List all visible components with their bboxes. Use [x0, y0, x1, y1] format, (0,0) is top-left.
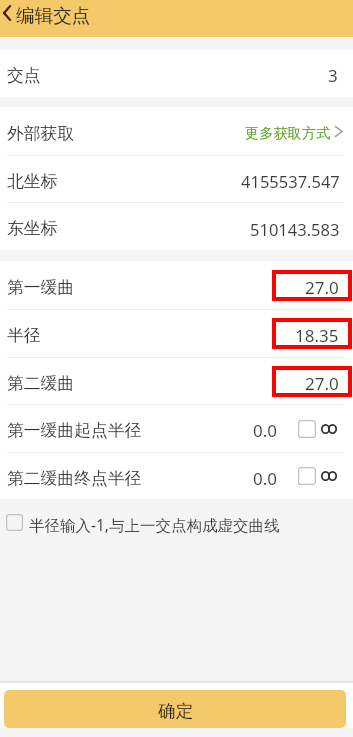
- staticText: 东坐标: [7, 218, 58, 239]
- staticText: 510143.583: [250, 218, 340, 240]
- button[interactable]: Checkbox: [298, 420, 316, 438]
- staticText: 27.0: [305, 372, 339, 395]
- staticText: 确定: [158, 700, 193, 722]
- button[interactable]: 东坐标: [0, 203, 353, 250]
- button[interactable]: 第一缓曲起点半径: [0, 405, 353, 452]
- staticText: 交点: [7, 65, 41, 86]
- staticText: 27.0: [305, 276, 339, 299]
- button[interactable]: 第一缓曲: [0, 261, 353, 309]
- staticText: 3: [328, 64, 338, 87]
- button[interactable]: 第二缓曲终点半径: [0, 453, 353, 499]
- staticText: 编辑交点: [16, 4, 91, 27]
- button[interactable]: 18.35: [276, 322, 348, 345]
- staticText: 第二缓曲: [7, 373, 75, 394]
- button[interactable]: 外部获取: [0, 107, 353, 155]
- staticText: 外部获取: [7, 123, 75, 144]
- staticText: 第二缓曲终点半径: [7, 468, 142, 489]
- staticText: 0.0: [253, 419, 278, 442]
- staticText: 0.0: [253, 467, 278, 490]
- staticText: 第一缓曲: [7, 277, 75, 298]
- button[interactable]: Back: [0, 4, 17, 22]
- button[interactable]: 27.0: [276, 274, 348, 297]
- staticText: 第一缓曲起点半径: [7, 420, 142, 441]
- staticText: 18.35: [295, 324, 339, 347]
- button[interactable]: 第二缓曲: [0, 358, 353, 404]
- button[interactable]: 交点: [0, 50, 353, 97]
- button[interactable]: 27.0: [276, 370, 348, 393]
- button[interactable]: Checkbox: [6, 514, 23, 531]
- staticText: 北坐标: [7, 171, 58, 192]
- staticText: 半径输入-1,与上一交点构成虚交曲线: [29, 514, 280, 535]
- button[interactable]: 半径: [0, 310, 353, 357]
- button[interactable]: Checkbox: [298, 467, 316, 485]
- button[interactable]: 北坐标: [0, 156, 353, 202]
- staticText: 4155537.547: [241, 170, 340, 192]
- button[interactable]: 确定: [4, 690, 346, 728]
- staticText: 半径: [7, 325, 41, 346]
- staticText: 更多获取方式: [245, 124, 331, 142]
- button[interactable]: Checkbox: [0, 499, 353, 545]
